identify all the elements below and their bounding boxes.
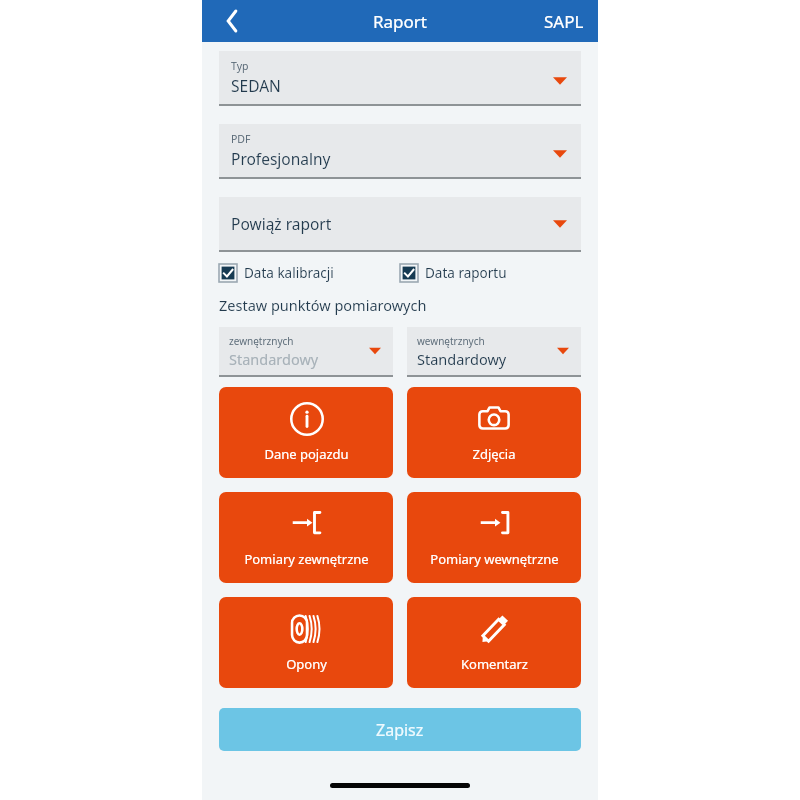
staticText: Zapisz — [376, 719, 424, 741]
button[interactable]: PDF — [219, 124, 581, 179]
button[interactable]: Zapisz — [219, 708, 581, 751]
staticText: Data raportu — [425, 264, 507, 282]
staticText: Data kalibracji — [244, 264, 334, 282]
button[interactable]: Dane pojazdu — [219, 387, 393, 478]
button[interactable]: Pomiary zewnętrzne — [219, 492, 393, 583]
button[interactable]: Komentarz — [407, 597, 581, 688]
button[interactable]: Data kalibracji — [219, 264, 400, 282]
staticText: Raport — [373, 10, 428, 33]
staticText: Zestaw punktów pomiarowych — [219, 295, 427, 315]
button[interactable]: Typ — [219, 51, 581, 106]
staticText: PDF — [231, 132, 251, 146]
button[interactable]: Data raportu — [400, 264, 581, 282]
button[interactable]: Powiąż raport — [219, 197, 581, 252]
staticText: Typ — [231, 59, 249, 73]
staticText: zewnętrznych — [229, 334, 294, 348]
staticText: Pomiary zewnętrzne — [244, 550, 369, 568]
staticText: Komentarz — [461, 655, 528, 673]
staticText: Powiąż raport — [231, 213, 332, 234]
staticText: wewnętrznych — [417, 334, 485, 348]
button[interactable]: Opony — [219, 597, 393, 688]
staticText: Dane pojazdu — [264, 445, 349, 463]
button[interactable]: Zdjęcia — [407, 387, 581, 478]
staticText: SAPL — [544, 10, 584, 33]
staticText: Pomiary wewnętrzne — [430, 550, 559, 568]
staticText: Zdjęcia — [472, 445, 516, 463]
button[interactable]: SAPL — [530, 2, 598, 41]
button[interactable]: wewnętrznych — [407, 327, 581, 377]
staticText: Opony — [286, 655, 327, 673]
button[interactable]: Pomiary wewnętrzne — [407, 492, 581, 583]
staticText: Profesjonalny — [231, 148, 331, 169]
button[interactable]: zewnętrznych — [219, 327, 393, 377]
staticText: Standardowy — [417, 349, 507, 369]
button[interactable]: Back — [212, 1, 252, 41]
staticText: Standardowy — [229, 349, 319, 369]
staticText: SEDAN — [231, 75, 281, 96]
